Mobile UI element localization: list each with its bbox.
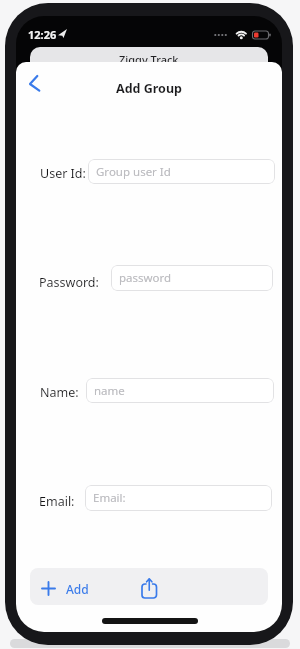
button[interactable]: password <box>111 265 273 291</box>
button[interactable] <box>18 66 52 100</box>
staticText: Email: <box>39 493 75 510</box>
staticText: Add <box>66 581 89 597</box>
button[interactable]: name <box>86 378 274 403</box>
staticText: Ziggy Track <box>119 52 179 62</box>
button[interactable]: Group user Id <box>88 159 275 184</box>
staticText: 12:26 <box>28 27 57 42</box>
staticText: Name: <box>40 384 79 401</box>
staticText: name <box>94 383 125 399</box>
staticText: Email: <box>93 490 126 506</box>
button[interactable]: Add <box>36 574 102 601</box>
staticText: password <box>119 270 172 286</box>
staticText: Group user Id <box>96 164 171 180</box>
button[interactable]: Email: <box>85 485 272 511</box>
staticText: Password: <box>39 274 99 291</box>
button[interactable] <box>138 574 160 601</box>
staticText: User Id: <box>40 165 86 182</box>
staticText: Add Group <box>116 80 182 97</box>
